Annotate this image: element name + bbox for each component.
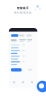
- staticText: 随时随地高效: [14, 11, 32, 14]
- button[interactable]: New chat: [37, 81, 46, 92]
- staticText: 智能助手: [17, 6, 29, 10]
